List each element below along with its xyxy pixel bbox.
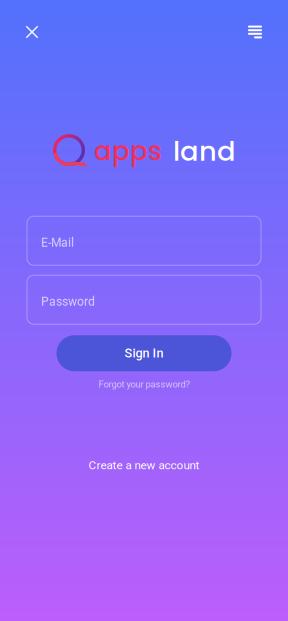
button[interactable]: Close — [12, 12, 52, 52]
staticText: Password — [41, 295, 95, 309]
button[interactable]: Password — [27, 275, 261, 324]
button[interactable]: Menu — [235, 12, 275, 52]
staticText: apps — [94, 133, 162, 169]
staticText: E-Mail — [41, 236, 74, 250]
button[interactable]: Create a new account — [88, 457, 199, 473]
staticText: Sign In — [124, 346, 163, 361]
staticText: Forgot your password? — [98, 379, 189, 390]
button[interactable]: E-Mail — [27, 216, 261, 265]
staticText: land — [173, 132, 236, 170]
button[interactable]: Sign In — [56, 335, 231, 371]
button[interactable]: Forgot your password? — [98, 377, 189, 391]
staticText: Create a new account — [88, 458, 199, 472]
